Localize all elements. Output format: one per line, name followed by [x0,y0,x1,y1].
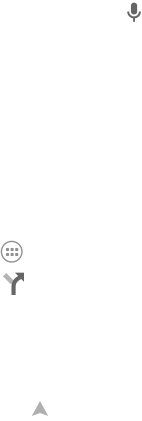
button[interactable]: Voice search [120,0,142,26]
button[interactable]: Apps [0,239,25,265]
button[interactable]: Directions [0,269,28,297]
